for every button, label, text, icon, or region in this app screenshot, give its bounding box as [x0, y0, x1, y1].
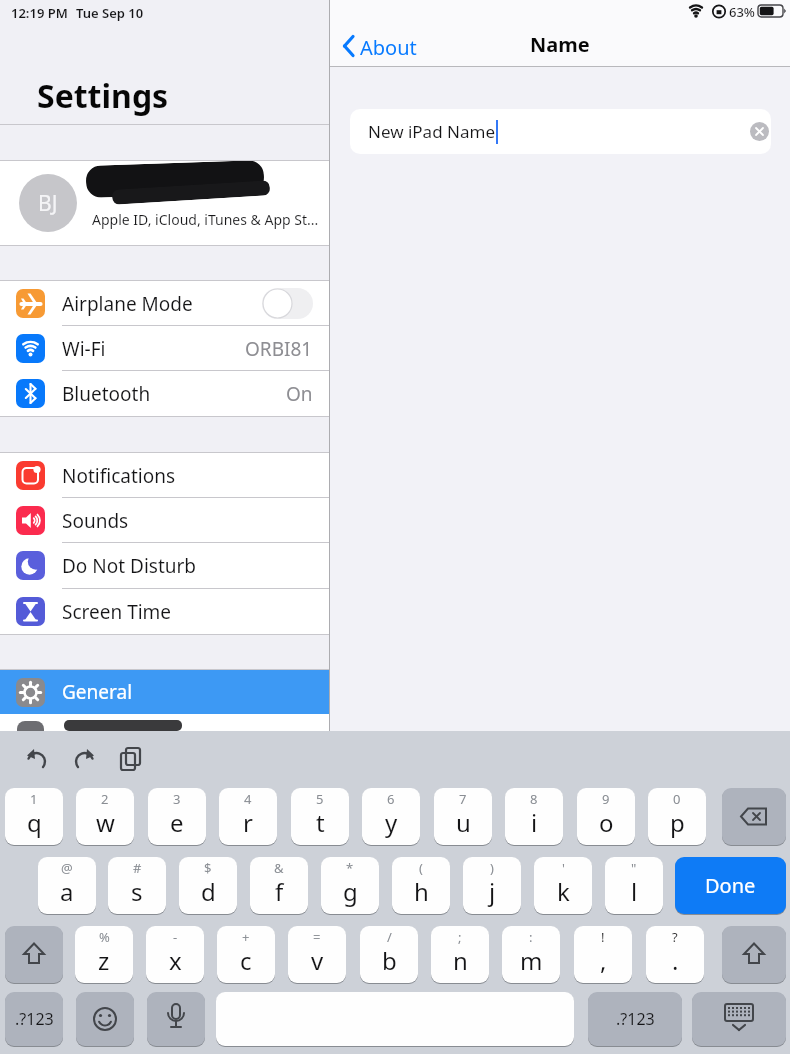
- button[interactable]: Airplane Mode: [0, 281, 329, 326]
- button[interactable]: #: [108, 857, 166, 914]
- staticText: 7: [459, 790, 467, 808]
- staticText: &: [274, 859, 284, 877]
- button[interactable]: Done: [675, 857, 786, 914]
- staticText: d: [201, 875, 216, 908]
- button[interactable]: [5, 926, 63, 983]
- staticText: New iPad Name: [368, 120, 495, 143]
- button[interactable]: 5: [291, 788, 349, 845]
- staticText: 4: [244, 790, 252, 808]
- button[interactable]: [71, 747, 97, 773]
- button[interactable]: [216, 992, 574, 1046]
- staticText: ;: [458, 928, 462, 946]
- staticText: Name: [530, 31, 590, 58]
- button[interactable]: ;: [431, 926, 489, 983]
- staticText: General: [62, 679, 133, 705]
- staticText: (: [419, 859, 423, 877]
- button[interactable]: Bluetooth: [0, 371, 329, 416]
- staticText: u: [456, 806, 471, 839]
- button[interactable]: [722, 926, 786, 983]
- button[interactable]: ?: [646, 926, 704, 983]
- button[interactable]: *: [321, 857, 379, 914]
- staticText: b: [382, 944, 397, 977]
- button[interactable]: ": [605, 857, 663, 914]
- staticText: ": [631, 859, 637, 877]
- staticText: 63%: [729, 3, 755, 21]
- staticText: e: [170, 806, 184, 839]
- button[interactable]: -: [146, 926, 204, 983]
- button[interactable]: 6: [362, 788, 420, 845]
- button[interactable]: $: [179, 857, 237, 914]
- staticText: j: [489, 875, 496, 908]
- staticText: p: [670, 806, 685, 839]
- staticText: 9: [602, 790, 610, 808]
- button[interactable]: [76, 992, 134, 1046]
- staticText: /: [387, 928, 392, 946]
- button[interactable]: Wi-Fi: [0, 326, 329, 371]
- button[interactable]: /: [360, 926, 418, 983]
- button[interactable]: [692, 992, 786, 1046]
- button[interactable]: New iPad Name: [350, 109, 771, 154]
- staticText: t: [316, 806, 325, 839]
- button[interactable]: [147, 992, 205, 1046]
- staticText: ': [562, 859, 565, 877]
- button[interactable]: 4: [219, 788, 277, 845]
- button[interactable]: 9: [577, 788, 635, 845]
- staticText: ): [490, 859, 494, 877]
- staticText: Done: [705, 872, 756, 899]
- button[interactable]: 8: [505, 788, 563, 845]
- button[interactable]: [262, 288, 313, 319]
- button[interactable]: (: [392, 857, 450, 914]
- button[interactable]: [750, 122, 769, 141]
- staticText: 8: [530, 790, 538, 808]
- button[interactable]: %: [75, 926, 133, 983]
- button[interactable]: 0: [648, 788, 706, 845]
- button[interactable]: .?123: [588, 992, 682, 1046]
- staticText: Settings: [37, 74, 169, 118]
- staticText: Apple ID, iCloud, iTunes & App St...: [92, 210, 319, 229]
- staticText: %: [99, 928, 110, 946]
- staticText: s: [131, 875, 143, 908]
- staticText: *: [346, 859, 354, 877]
- button[interactable]: +: [217, 926, 275, 983]
- button[interactable]: 3: [148, 788, 206, 845]
- staticText: y: [385, 806, 398, 839]
- staticText: 12:19 PM: [11, 4, 68, 22]
- button[interactable]: 2: [76, 788, 134, 845]
- button[interactable]: Do Not Disturb: [0, 543, 329, 589]
- button[interactable]: [722, 788, 786, 845]
- button[interactable]: .?123: [5, 992, 63, 1046]
- button[interactable]: :: [502, 926, 560, 983]
- staticText: 0: [673, 790, 681, 808]
- staticText: o: [599, 806, 614, 839]
- staticText: x: [169, 944, 182, 977]
- button[interactable]: General: [0, 670, 329, 714]
- button[interactable]: &: [250, 857, 308, 914]
- staticText: 5: [316, 790, 324, 808]
- staticText: @: [61, 859, 73, 877]
- button[interactable]: [118, 746, 144, 774]
- staticText: Notifications: [62, 463, 176, 489]
- staticText: ORBI81: [245, 336, 313, 362]
- button[interactable]: BJ: [0, 161, 329, 245]
- staticText: !: [601, 928, 605, 946]
- button[interactable]: Notifications: [0, 453, 329, 498]
- staticText: g: [343, 875, 358, 908]
- staticText: #: [133, 859, 142, 877]
- button[interactable]: 1: [5, 788, 63, 845]
- button[interactable]: =: [288, 926, 346, 983]
- staticText: c: [240, 944, 252, 977]
- button[interactable]: [24, 747, 50, 773]
- staticText: -: [173, 928, 178, 946]
- button[interactable]: ): [463, 857, 521, 914]
- button[interactable]: [343, 35, 355, 57]
- button[interactable]: 7: [434, 788, 492, 845]
- staticText: f: [275, 875, 284, 908]
- button[interactable]: Screen Time: [0, 589, 329, 634]
- button[interactable]: ': [534, 857, 592, 914]
- staticText: Screen Time: [62, 599, 172, 625]
- button[interactable]: @: [38, 857, 96, 914]
- button[interactable]: !: [574, 926, 632, 983]
- button[interactable]: Sounds: [0, 498, 329, 543]
- staticText: v: [311, 944, 324, 977]
- staticText: l: [631, 875, 638, 908]
